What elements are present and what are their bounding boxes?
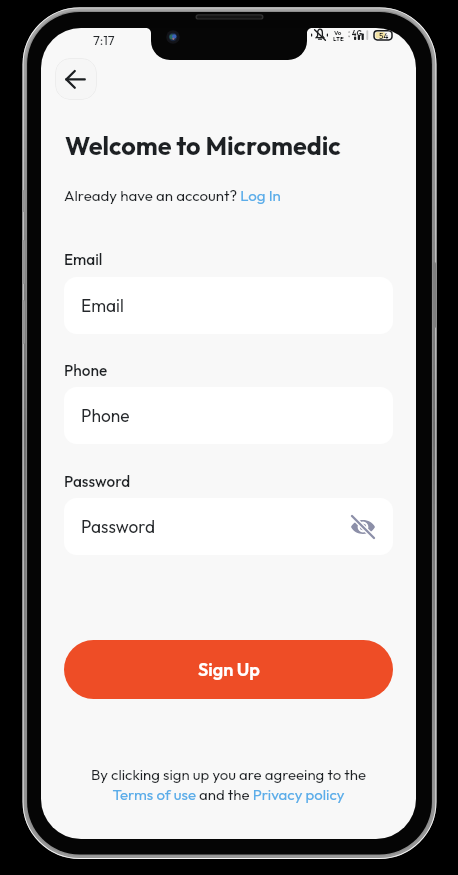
staticText: 54 [379,31,389,41]
staticText: Phone [81,405,376,427]
staticText: 7:17 [93,32,115,48]
staticText: By clicking sign up you are agreeing to … [64,765,393,804]
staticText: Password [81,516,350,538]
button[interactable]: Email [64,277,393,334]
button[interactable]: Phone [64,387,393,444]
button[interactable]: Password [64,498,393,555]
staticText: Email [64,250,103,269]
staticText: Already have an account? Log In [64,186,281,205]
button[interactable]: Show password [350,514,376,540]
staticText: Password [64,472,131,491]
staticText: LTE [333,35,344,43]
staticText: Vo [334,29,342,37]
button[interactable]: Sign Up [64,640,393,699]
staticText: Email [81,295,376,317]
staticText: Sign Up [198,658,260,681]
staticText: Phone [64,361,108,380]
staticText: 4G [352,29,363,38]
staticText: Welcome to Micromedic [65,130,341,162]
button[interactable]: Back [55,58,97,100]
